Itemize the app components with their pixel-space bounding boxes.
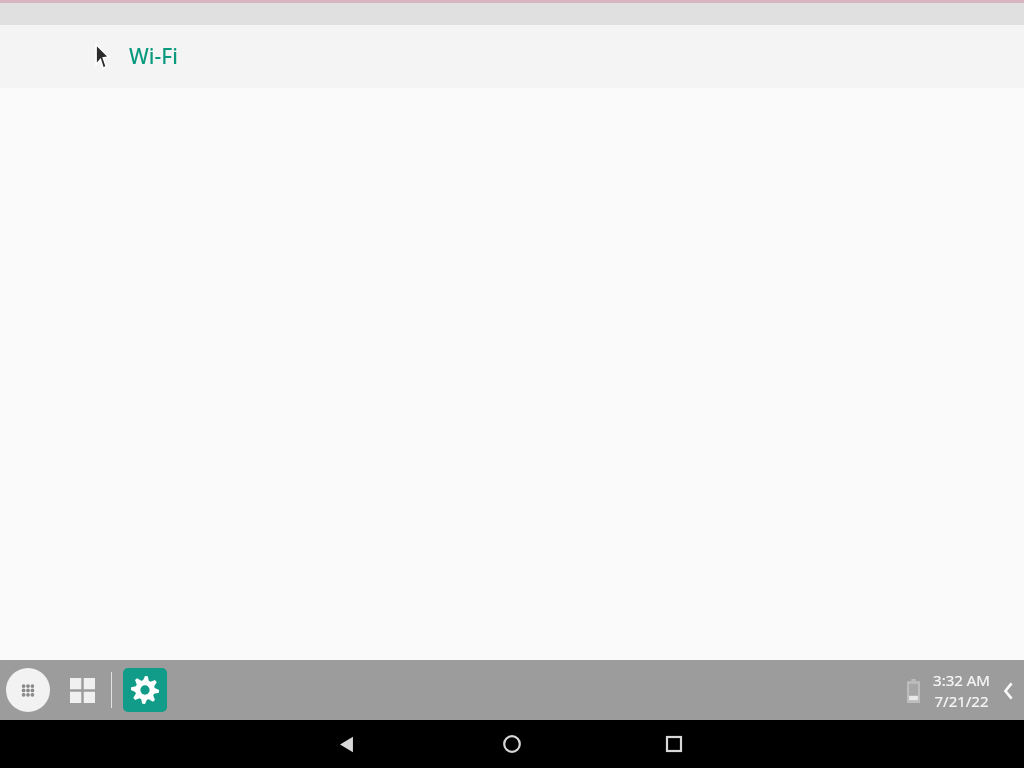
- button[interactable]: Back: [322, 720, 370, 768]
- button[interactable]: Home: [488, 720, 536, 768]
- button[interactable]: 3:32 AM: [933, 670, 990, 711]
- button[interactable]: All apps: [6, 668, 50, 712]
- staticText: Wi-Fi: [129, 42, 178, 71]
- button[interactable]: Expand notifications: [996, 671, 1020, 711]
- button[interactable]: Settings: [123, 668, 167, 712]
- button[interactable]: Recent apps grid: [62, 670, 102, 710]
- staticText: 3:32 AM: [933, 670, 990, 690]
- button[interactable]: Recent apps: [650, 720, 698, 768]
- button[interactable]: Battery: [900, 674, 926, 708]
- button[interactable]: Wi-Fi: [0, 25, 1024, 88]
- staticText: 7/21/22: [934, 691, 989, 711]
